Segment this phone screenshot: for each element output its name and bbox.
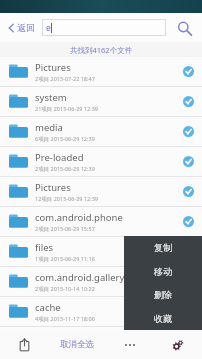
staticText: 1项目 2015-06-29 11:16 xyxy=(35,255,95,263)
button[interactable]: 返回 xyxy=(6,18,37,37)
staticText: 复制 xyxy=(154,242,172,253)
button[interactable]: Pictures xyxy=(0,177,202,206)
staticText: e xyxy=(46,22,51,34)
staticText: com.android.gallery3d xyxy=(35,271,136,284)
button[interactable]: Share xyxy=(0,330,48,359)
staticText: 6项目 2015-06-29 12:39 xyxy=(35,135,95,143)
staticText: 2项目 2015-10-14 10:22 xyxy=(35,285,95,293)
button[interactable]: Search xyxy=(172,16,196,40)
button[interactable]: cache xyxy=(0,297,202,326)
staticText: 取消全选 xyxy=(60,339,94,350)
staticText: 2项目 2015-07-22 18:47 xyxy=(35,75,95,83)
staticText: 2项目 2015-06-29 12:39 xyxy=(35,165,95,173)
button[interactable]: e xyxy=(42,19,166,36)
staticText: system xyxy=(35,91,67,104)
button[interactable]: 移动 xyxy=(124,260,202,283)
button[interactable]: 删除 xyxy=(124,283,202,306)
staticText: 共找到4162个文件 xyxy=(70,45,133,55)
button[interactable]: 收藏 xyxy=(124,307,202,330)
staticText: cache xyxy=(35,301,61,314)
staticText: multiscreen xyxy=(35,331,88,344)
staticText: 21项目 2015-06-29 12:39 xyxy=(35,105,98,113)
button[interactable]: 复制 xyxy=(124,236,202,259)
staticText: 2项目 2015-06-29 15:57 xyxy=(35,225,95,233)
button[interactable]: Settings xyxy=(154,330,202,359)
button[interactable]: Pictures xyxy=(0,57,202,86)
staticText: com.android.phone xyxy=(35,211,123,224)
button[interactable]: files xyxy=(0,237,202,266)
staticText: 3项目 2015-06-29 12:39 xyxy=(35,345,95,353)
staticText: Pictures xyxy=(35,181,71,194)
staticText: 4项目 2015-11-17 18:06 xyxy=(35,315,95,323)
button[interactable]: com.android.gallery3d xyxy=(0,267,202,296)
button[interactable]: media xyxy=(0,117,202,146)
staticText: 收藏 xyxy=(154,313,172,324)
staticText: Pictures xyxy=(35,61,71,74)
staticText: media xyxy=(35,121,63,134)
button[interactable]: 取消全选 xyxy=(48,330,106,359)
button[interactable]: More options xyxy=(106,330,154,359)
staticText: Pre-loaded xyxy=(35,151,84,164)
staticText: files xyxy=(35,241,54,254)
button[interactable]: system xyxy=(0,87,202,116)
staticText: 12项目 2015-06-29 12:39 xyxy=(35,195,98,203)
button[interactable]: multiscreen xyxy=(0,327,202,356)
button[interactable]: com.android.phone xyxy=(0,207,202,236)
staticText: 返回 xyxy=(17,22,35,33)
staticText: 删除 xyxy=(154,289,172,300)
staticText: 移动 xyxy=(154,266,172,277)
button[interactable]: Pre-loaded xyxy=(0,147,202,176)
